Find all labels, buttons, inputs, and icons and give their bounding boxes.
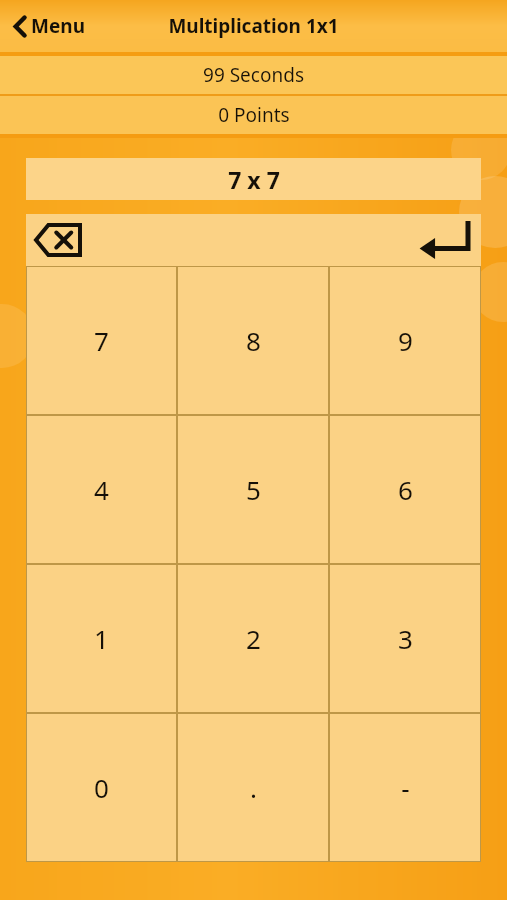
staticText: 0 Points — [218, 102, 290, 128]
staticText: 1 — [94, 621, 109, 656]
staticText: 8 — [246, 323, 261, 358]
staticText: 2 — [246, 621, 261, 656]
staticText: 5 — [246, 472, 261, 507]
staticText: 7 x 7 — [228, 164, 280, 195]
button[interactable]: Enter — [411, 215, 475, 265]
button[interactable]: . — [177, 713, 329, 862]
staticText: Multiplication 1x1 — [168, 13, 339, 39]
button[interactable]: - — [329, 713, 481, 862]
button[interactable]: 3 — [329, 564, 481, 713]
button[interactable]: 5 — [177, 415, 329, 564]
button[interactable]: 1 — [26, 564, 177, 713]
staticText: 7 — [94, 323, 109, 358]
button[interactable]: 2 — [177, 564, 329, 713]
staticText: 99 Seconds — [203, 62, 304, 88]
button[interactable]: 8 — [177, 266, 329, 415]
staticText: 9 — [398, 323, 413, 358]
staticText: - — [401, 770, 410, 805]
staticText: 0 — [94, 770, 109, 805]
button[interactable]: 6 — [329, 415, 481, 564]
button[interactable]: 0 — [26, 713, 177, 862]
staticText: . — [250, 770, 257, 805]
button[interactable]: 4 — [26, 415, 177, 564]
button[interactable]: Menu — [0, 5, 101, 47]
button[interactable]: Backspace — [30, 217, 86, 263]
button[interactable]: 7 — [26, 266, 177, 415]
staticText: 3 — [398, 621, 413, 656]
staticText: 4 — [94, 472, 109, 507]
staticText: 6 — [398, 472, 413, 507]
staticText: Menu — [31, 13, 85, 39]
button[interactable]: 9 — [329, 266, 481, 415]
